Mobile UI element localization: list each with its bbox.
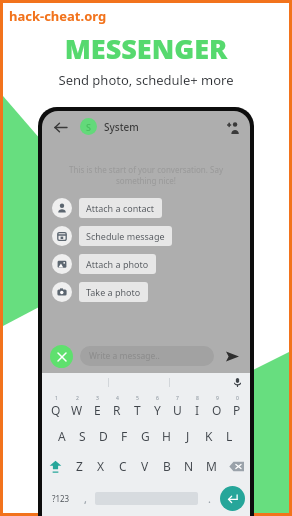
staticText: Take a photo (86, 286, 141, 298)
button[interactable]: S (72, 421, 93, 451)
staticText: 9 (216, 395, 219, 402)
staticText: H (162, 428, 171, 444)
button[interactable]: Back (49, 116, 71, 138)
button[interactable]: D (93, 421, 114, 451)
staticText: This is the start of your conversation. … (64, 164, 228, 186)
button[interactable]: Z (69, 451, 90, 481)
button[interactable]: Backspace (222, 451, 250, 481)
button[interactable]: Attach a contact (52, 198, 250, 218)
staticText: S (86, 121, 91, 133)
button[interactable]: M (200, 451, 222, 481)
staticText: R (113, 402, 121, 418)
staticText: S (79, 428, 86, 444)
button[interactable]: Add people (223, 117, 243, 137)
staticText: Q (51, 402, 61, 418)
button[interactable]: ?123 (47, 481, 75, 515)
staticText: , (84, 491, 87, 506)
staticText: 0 (236, 395, 239, 402)
staticText: Schedule message (86, 230, 165, 242)
button[interactable]: C (112, 451, 134, 481)
staticText: E (94, 402, 101, 418)
staticText: 3 (96, 395, 99, 402)
staticText: U (173, 402, 182, 418)
button[interactable]: Take a photo (52, 282, 250, 302)
button[interactable]: 7 (167, 391, 187, 421)
staticText: 4 (116, 395, 119, 402)
button[interactable]: Comma (75, 481, 95, 515)
button[interactable]: Close (50, 345, 73, 368)
button[interactable]: V (134, 451, 156, 481)
staticText: Z (76, 458, 83, 474)
staticText: ?123 (52, 493, 70, 504)
staticText: Attach a contact (86, 202, 155, 214)
staticText: I (195, 402, 200, 418)
staticText: P (233, 402, 241, 418)
staticText: D (99, 428, 108, 444)
staticText: C (119, 458, 127, 474)
staticText: hack-cheat.org (9, 7, 107, 25)
staticText: V (141, 458, 149, 474)
staticText: G (141, 428, 150, 444)
button[interactable]: Write a message.. (89, 346, 205, 366)
staticText: K (205, 428, 213, 444)
button[interactable]: Schedule message (52, 226, 250, 246)
staticText: N (184, 458, 194, 474)
staticText: Send photo, schedule+ more (0, 71, 292, 89)
button[interactable]: Shift (42, 451, 69, 481)
button[interactable]: 9 (207, 391, 227, 421)
staticText: J (186, 428, 190, 444)
staticText: 8 (196, 395, 199, 402)
button[interactable]: H (156, 421, 177, 451)
staticText: System (104, 120, 139, 134)
button[interactable]: Attach a photo (52, 254, 250, 274)
button[interactable]: 1 (45, 391, 66, 421)
staticText: X (97, 458, 105, 474)
staticText: 2 (76, 395, 79, 402)
staticText: A (58, 428, 66, 444)
staticText: M (206, 458, 217, 474)
button[interactable]: F (114, 421, 135, 451)
button[interactable]: 0 (227, 391, 247, 421)
staticText: Y (154, 402, 161, 418)
button[interactable]: B (156, 451, 178, 481)
staticText: L (226, 428, 233, 444)
button[interactable]: 2 (66, 391, 87, 421)
staticText: O (212, 402, 222, 418)
button[interactable]: S (80, 118, 139, 135)
button[interactable]: N (178, 451, 200, 481)
staticText: 7 (176, 395, 179, 402)
button[interactable]: K (198, 421, 219, 451)
button[interactable]: 5 (127, 391, 147, 421)
staticText: T (134, 402, 141, 418)
button[interactable]: 4 (107, 391, 127, 421)
button[interactable]: X (90, 451, 112, 481)
button[interactable]: A (52, 421, 72, 451)
staticText: . (208, 491, 211, 506)
staticText: 6 (156, 395, 159, 402)
button[interactable]: L (219, 421, 240, 451)
staticText: MESSENGER (0, 30, 292, 67)
staticText: F (121, 428, 128, 444)
staticText: 1 (55, 395, 58, 402)
button[interactable]: Voice input (230, 375, 244, 389)
button[interactable]: G (135, 421, 156, 451)
staticText: B (163, 458, 171, 474)
button[interactable]: 8 (187, 391, 207, 421)
button[interactable]: Enter (220, 486, 245, 511)
button[interactable]: 3 (87, 391, 107, 421)
staticText: W (71, 402, 83, 418)
button[interactable]: Period (198, 481, 220, 515)
staticText: Attach a photo (86, 258, 149, 270)
button[interactable]: J (177, 421, 198, 451)
button[interactable]: 6 (147, 391, 167, 421)
staticText: 5 (136, 395, 139, 402)
staticText: Write a message.. (89, 350, 160, 362)
button[interactable]: Send (222, 346, 242, 366)
